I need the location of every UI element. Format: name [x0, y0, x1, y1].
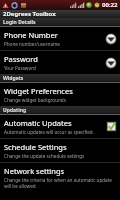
staticText: 00:22 — [102, 1, 118, 9]
button[interactable]: Network settings — [0, 163, 120, 192]
button[interactable]: Password options — [105, 57, 117, 69]
button[interactable]: Automatic Updates checkbox — [106, 121, 117, 132]
staticText: Login Details — [3, 19, 36, 26]
staticText: Phone Number — [4, 30, 58, 40]
button[interactable]: Phone Number — [0, 27, 120, 50]
button[interactable]: Automatic Updates — [0, 115, 120, 138]
staticText: Widget Preferences — [4, 86, 73, 96]
staticText: Automatic updates will occur as specifie… — [4, 129, 94, 135]
staticText: Widgets — [3, 75, 24, 82]
staticText: Your Password — [4, 65, 36, 71]
staticText: Phone number/username — [4, 41, 60, 47]
staticText: Automatic Updates — [4, 118, 72, 128]
staticText: Updating — [3, 107, 27, 114]
button[interactable]: Password — [0, 51, 120, 74]
button[interactable]: Schedule Settings — [0, 139, 120, 162]
staticText: Change widget backgrounds — [4, 97, 66, 103]
staticText: Change the criteria for when an automati… — [4, 177, 117, 189]
button[interactable]: Widget Preferences — [0, 83, 120, 106]
staticText: Schedule Settings — [4, 142, 67, 152]
button[interactable]: Phone Number options — [105, 33, 117, 45]
staticText: Change the update schedule settings — [4, 153, 85, 159]
staticText: Network settings — [4, 166, 65, 176]
staticText: 2Degrees Toolbox — [3, 10, 56, 18]
staticText: Password — [4, 54, 38, 64]
